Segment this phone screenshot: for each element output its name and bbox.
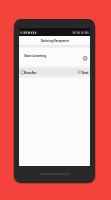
button[interactable]: Timer <box>19 66 90 78</box>
staticText: Next <box>82 71 89 75</box>
button[interactable]: Start Learning <box>19 48 90 66</box>
staticText: Show Ans <box>24 71 37 75</box>
staticText: Marketing Management <box>41 39 69 42</box>
staticText: Start Learning <box>24 54 47 58</box>
other: Next question <box>77 69 83 75</box>
other: Options <box>81 54 89 62</box>
other: Timer <box>20 69 26 75</box>
